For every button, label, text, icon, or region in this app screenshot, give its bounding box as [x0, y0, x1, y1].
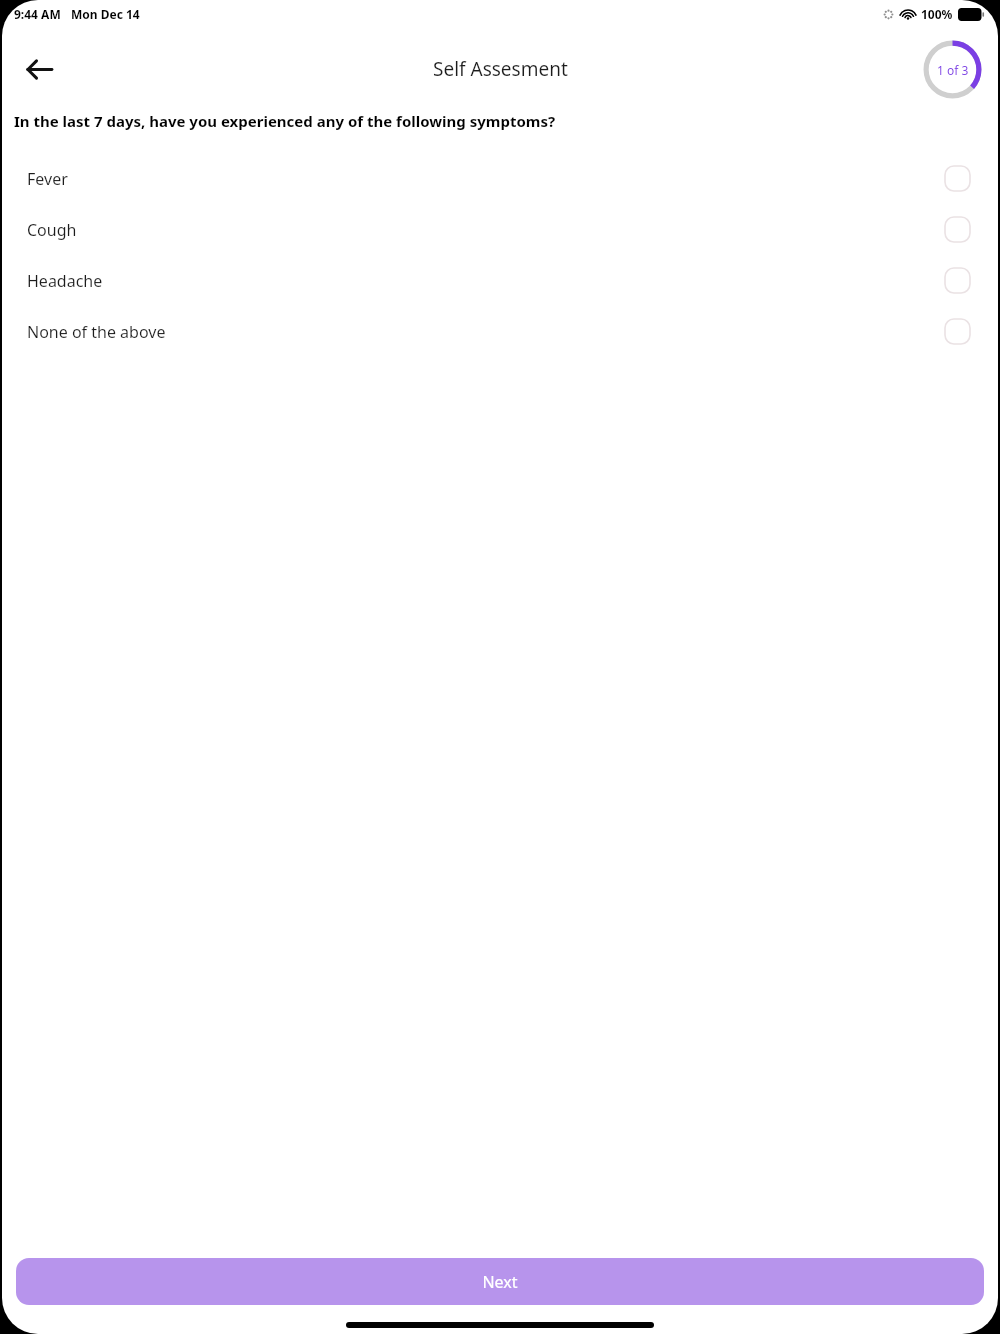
button[interactable]: Cough: [2, 204, 998, 255]
staticText: Cough: [27, 219, 77, 241]
staticText: In the last 7 days, have you experienced…: [14, 111, 556, 131]
button[interactable]: None of the above: [2, 306, 998, 357]
button[interactable]: Step 1 of 3: [922, 39, 983, 100]
button[interactable]: Fever: [2, 153, 998, 204]
staticText: 1 of 3: [937, 62, 969, 78]
staticText: Fever: [27, 168, 68, 190]
staticText: Headache: [27, 270, 103, 292]
button[interactable]: Back: [16, 46, 62, 92]
button[interactable]: Headache: [2, 255, 998, 306]
staticText: None of the above: [27, 321, 166, 343]
staticText: 100%: [921, 6, 953, 22]
staticText: Mon Dec 14: [71, 6, 140, 22]
staticText: Next: [482, 1271, 518, 1293]
button[interactable]: Next: [16, 1258, 984, 1305]
staticText: 9:44 AM: [14, 6, 61, 22]
staticText: Self Assesment: [433, 56, 568, 82]
